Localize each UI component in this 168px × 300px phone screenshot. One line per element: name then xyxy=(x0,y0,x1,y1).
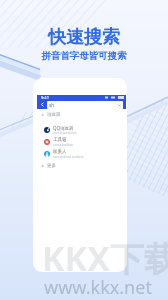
staticText: 更多 xyxy=(47,163,56,169)
staticText: com.a.toolbox xyxy=(53,143,74,147)
staticText: 联系人 xyxy=(53,149,67,155)
staticText: 快速搜索 xyxy=(48,26,120,49)
button[interactable]: 联系人 xyxy=(44,148,126,160)
button[interactable]: Back xyxy=(39,101,46,108)
button[interactable]: QQ浏览器 xyxy=(44,124,126,136)
button[interactable]: 工具箱 xyxy=(44,136,126,148)
staticText: KKX下载 xyxy=(42,235,168,281)
staticText: QQ浏览器 xyxy=(53,125,74,131)
staticText: com.tencent.mtt xyxy=(53,131,77,135)
staticText: 浏览器 xyxy=(47,112,61,118)
staticText: 工具箱 xyxy=(53,137,67,143)
button[interactable]: sh xyxy=(49,101,121,109)
staticText: 拼音首字母皆可搜索 xyxy=(41,50,127,62)
staticText: sh xyxy=(49,102,54,108)
staticText: 9:41 xyxy=(41,95,49,100)
staticText: www.kkx.net xyxy=(44,275,152,300)
staticText: com.android.contacts xyxy=(53,155,84,159)
